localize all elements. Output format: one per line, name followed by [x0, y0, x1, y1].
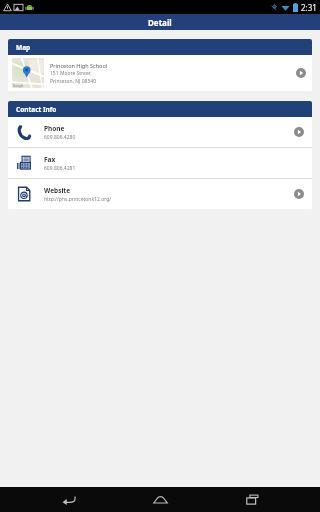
staticText: 609.806.4280 — [44, 134, 76, 141]
button[interactable]: Home — [137, 487, 183, 512]
staticText: Google — [13, 84, 24, 88]
staticText: 151 Moore Street — [50, 70, 91, 77]
staticText: Detail — [148, 17, 172, 28]
staticText: http://phs.princetonk12.org/ — [44, 196, 112, 203]
button[interactable]: Recent apps — [229, 487, 275, 512]
button[interactable]: Google — [8, 55, 312, 91]
button[interactable]: Back — [46, 487, 92, 512]
staticText: Princeton High School — [50, 62, 108, 69]
staticText: Phone — [44, 124, 65, 133]
staticText: Fax — [44, 155, 56, 164]
staticText: Princeton, NJ 08540 — [50, 78, 97, 85]
staticText: Map — [16, 43, 31, 52]
button[interactable]: Fax — [8, 148, 312, 178]
staticText: Contact Info — [16, 105, 57, 114]
staticText: 609.806.4281 — [44, 165, 76, 172]
button[interactable]: Open — [294, 189, 304, 199]
button[interactable]: Website — [8, 179, 312, 209]
button[interactable]: Phone — [8, 117, 312, 147]
button[interactable]: Open — [294, 127, 304, 137]
staticText: Website — [44, 186, 71, 195]
staticText: 2:31 — [301, 2, 317, 13]
button[interactable]: Open — [296, 68, 306, 78]
